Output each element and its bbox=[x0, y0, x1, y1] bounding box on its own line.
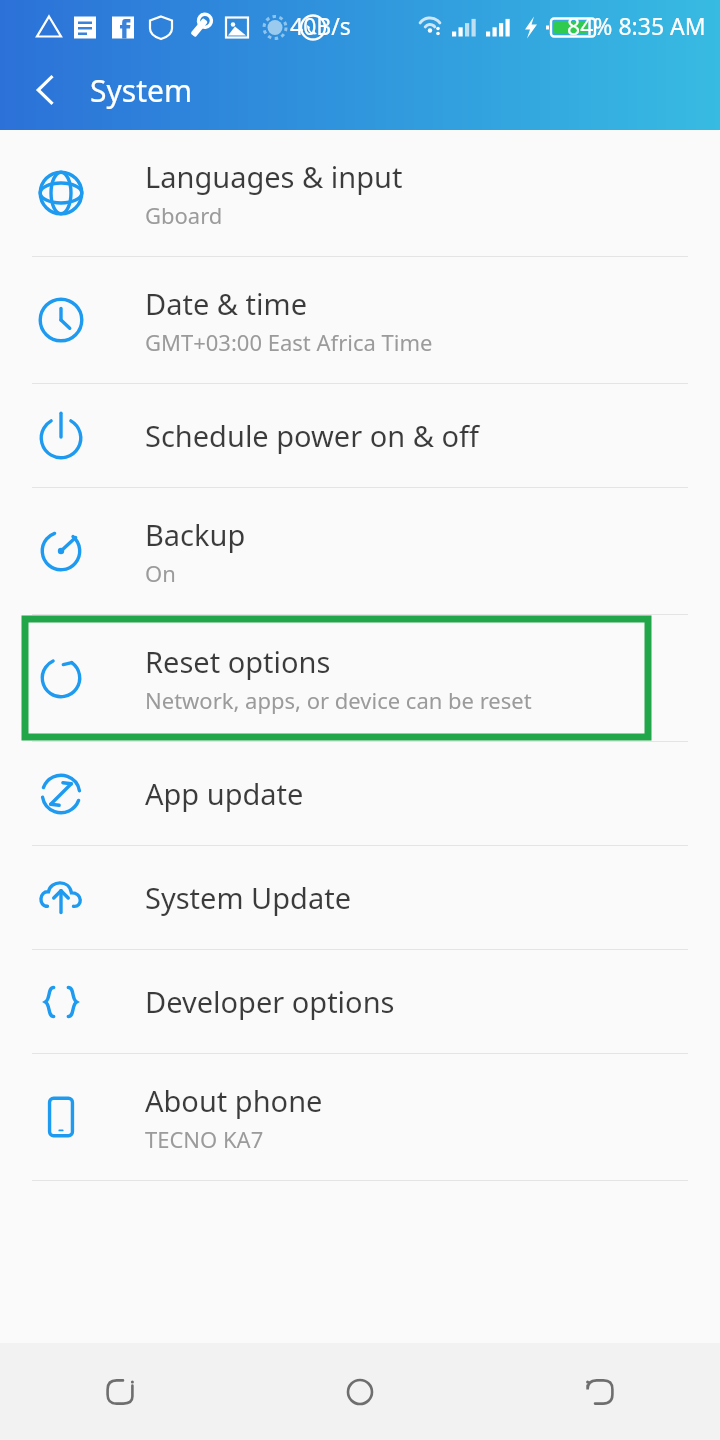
staticText: Gboard bbox=[145, 200, 223, 230]
staticText: Reset options bbox=[145, 642, 331, 681]
button[interactable]: Back bbox=[480, 1343, 720, 1440]
button[interactable]: Date & time bbox=[0, 257, 720, 383]
staticText: Schedule power on & off bbox=[145, 416, 479, 455]
staticText: 40B/s bbox=[290, 10, 351, 41]
button[interactable]: Backup bbox=[0, 488, 720, 614]
staticText: 84% 8:35 AM bbox=[567, 10, 706, 41]
staticText: Developer options bbox=[145, 982, 395, 1021]
button[interactable]: App update bbox=[0, 742, 720, 845]
button[interactable]: Reset options bbox=[0, 615, 720, 741]
button[interactable]: About phone bbox=[0, 1054, 720, 1180]
staticText: System Update bbox=[145, 878, 352, 917]
staticText: Date & time bbox=[145, 284, 307, 323]
button[interactable]: Back bbox=[0, 50, 90, 130]
button[interactable]: System Update bbox=[0, 846, 720, 949]
staticText: About phone bbox=[145, 1081, 323, 1120]
button[interactable]: Schedule power on & off bbox=[0, 384, 720, 487]
button[interactable]: Home bbox=[240, 1343, 480, 1440]
staticText: GMT+03:00 East Africa Time bbox=[145, 327, 433, 357]
button[interactable]: Developer options bbox=[0, 950, 720, 1053]
staticText: Backup bbox=[145, 515, 246, 554]
staticText: Network, apps, or device can be reset bbox=[145, 685, 532, 715]
button[interactable]: Languages & input bbox=[0, 130, 720, 256]
staticText: Languages & input bbox=[145, 157, 403, 196]
staticText: App update bbox=[145, 774, 304, 813]
staticText: TECNO KA7 bbox=[145, 1124, 264, 1154]
button[interactable]: Recent apps bbox=[0, 1343, 240, 1440]
staticText: System bbox=[90, 70, 192, 111]
staticText: On bbox=[145, 558, 176, 588]
